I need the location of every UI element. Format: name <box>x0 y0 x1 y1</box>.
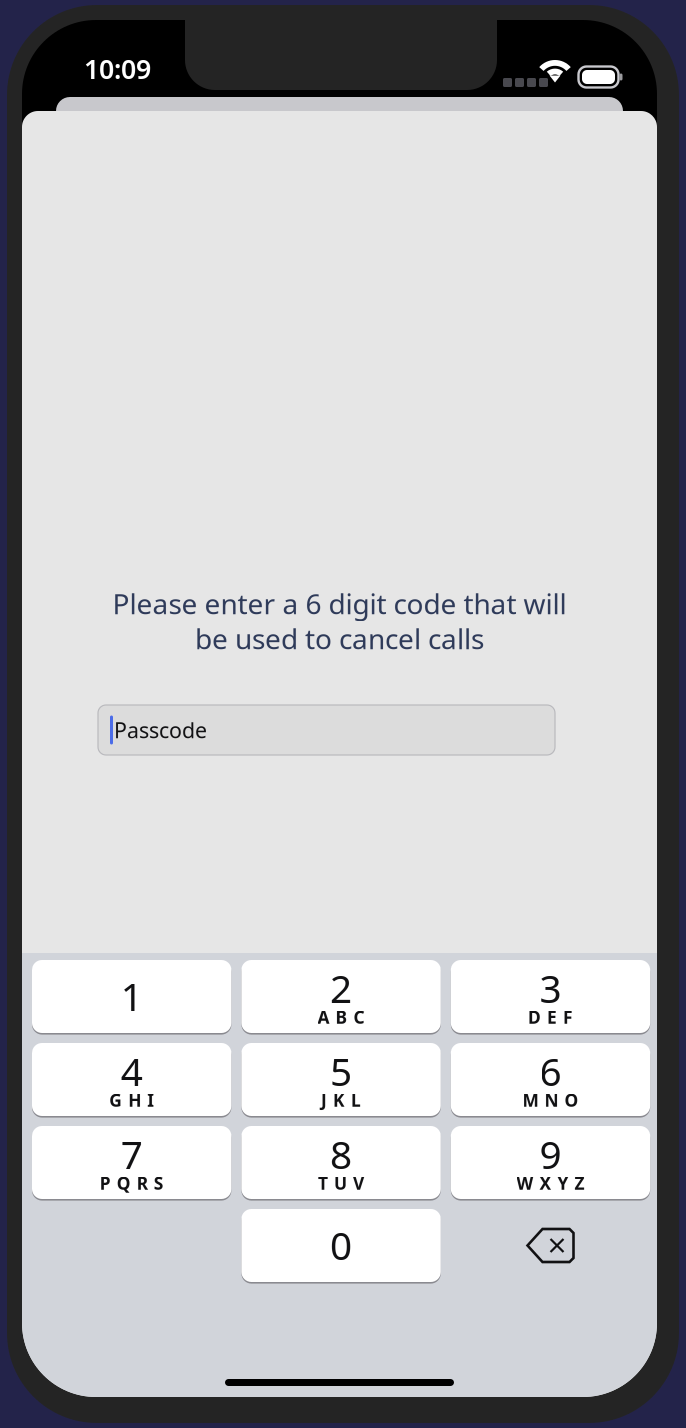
staticText: D E F <box>528 1005 573 1028</box>
staticText: be used to cancel calls <box>195 620 484 657</box>
staticText: 3 <box>539 962 561 1014</box>
staticText: 5 <box>330 1045 352 1097</box>
staticText: 0 <box>330 1219 352 1271</box>
button[interactable]: 4 <box>32 1043 231 1116</box>
staticText: G H I <box>109 1088 154 1111</box>
button[interactable]: 3 <box>451 960 650 1033</box>
button[interactable]: 6 <box>451 1043 650 1116</box>
staticText: A B C <box>318 1005 365 1028</box>
button[interactable]: 2 <box>241 960 441 1033</box>
staticText: 1 <box>121 970 143 1022</box>
button[interactable]: 7 <box>32 1126 231 1199</box>
staticText: W X Y Z <box>516 1171 584 1194</box>
staticText: Passcode <box>114 716 207 744</box>
button[interactable]: 0 <box>241 1209 441 1282</box>
staticText: T U V <box>318 1171 364 1194</box>
staticText: 4 <box>121 1045 143 1097</box>
staticText: 6 <box>539 1045 561 1097</box>
staticText: 2 <box>330 962 352 1014</box>
staticText: 10:09 <box>84 51 151 86</box>
staticText: P Q R S <box>100 1171 164 1194</box>
staticText: 8 <box>330 1128 352 1180</box>
button[interactable]: 5 <box>241 1043 441 1116</box>
staticText: J K L <box>321 1088 361 1111</box>
button[interactable]: 1 <box>32 960 231 1033</box>
button[interactable]: Delete <box>451 1209 650 1282</box>
staticText: 7 <box>121 1128 143 1180</box>
staticText: 9 <box>539 1128 561 1180</box>
button[interactable]: 8 <box>241 1126 441 1199</box>
staticText: Please enter a 6 digit code that will <box>112 585 566 622</box>
staticText: M N O <box>522 1088 578 1111</box>
button[interactable]: 9 <box>451 1126 650 1199</box>
